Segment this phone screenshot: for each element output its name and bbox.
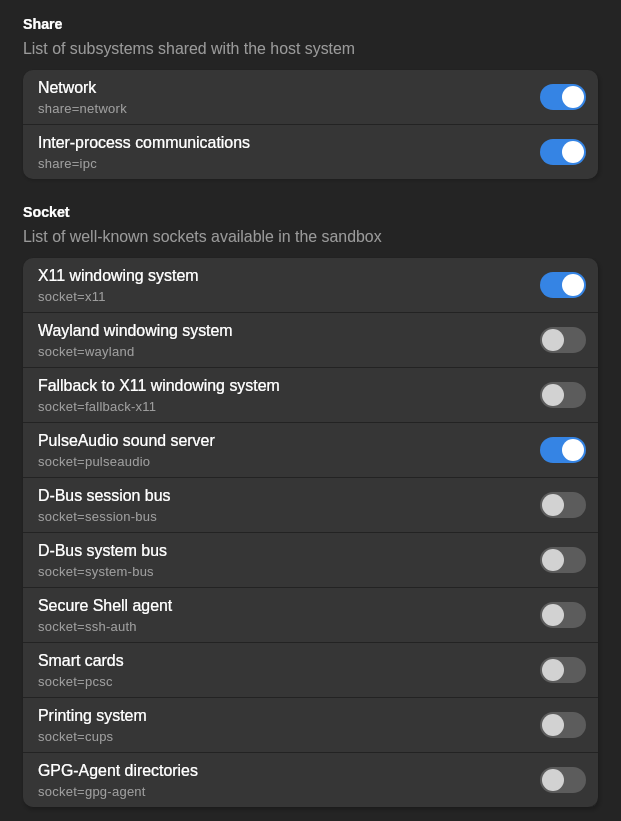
staticText: socket=gpg-agent [38,784,146,799]
button[interactable]: PulseAudio sound server [23,423,598,477]
staticText: List of subsystems shared with the host … [23,40,356,58]
button[interactable]: D-Bus session bus [23,478,598,532]
button[interactable]: Disabled [540,767,586,793]
button[interactable]: Disabled [540,657,586,683]
staticText: socket=session-bus [38,509,158,524]
button[interactable]: D-Bus system bus [23,533,598,587]
button[interactable]: Disabled [540,547,586,573]
button[interactable]: Enabled [540,139,586,165]
button[interactable]: Fallback to X11 windowing system [23,368,598,422]
staticText: List of well-known sockets available in … [23,228,382,246]
staticText: socket=fallback-x11 [38,399,157,414]
staticText: Fallback to X11 windowing system [38,377,280,395]
staticText: Smart cards [38,652,124,670]
button[interactable]: Network [23,70,598,124]
staticText: Wayland windowing system [38,322,233,340]
button[interactable]: Disabled [540,712,586,738]
button[interactable]: Inter-process communications [23,125,598,179]
staticText: share=network [38,101,127,116]
staticText: D-Bus session bus [38,487,171,505]
staticText: socket=wayland [38,344,135,359]
button[interactable]: Wayland windowing system [23,313,598,367]
button[interactable]: Secure Shell agent [23,588,598,642]
button[interactable]: Disabled [540,602,586,628]
button[interactable]: Smart cards [23,643,598,697]
staticText: X11 windowing system [38,267,199,285]
staticText: socket=cups [38,729,114,744]
button[interactable]: Disabled [540,327,586,353]
button[interactable]: Enabled [540,84,586,110]
staticText: socket=ssh-auth [38,619,137,634]
staticText: D-Bus system bus [38,542,167,560]
staticText: Network [38,79,97,97]
button[interactable]: X11 windowing system [23,258,598,312]
button[interactable]: Disabled [540,382,586,408]
staticText: Secure Shell agent [38,597,173,615]
staticText: PulseAudio sound server [38,432,215,450]
staticText: socket=x11 [38,289,106,304]
button[interactable]: Disabled [540,492,586,518]
staticText: socket=system-bus [38,564,154,579]
staticText: share=ipc [38,156,97,171]
staticText: socket=pcsc [38,674,113,689]
button[interactable]: Enabled [540,437,586,463]
staticText: GPG-Agent directories [38,762,198,780]
button[interactable]: Printing system [23,698,598,752]
staticText: Socket [23,204,70,220]
staticText: Inter-process communications [38,134,250,152]
staticText: Share [23,16,63,32]
button[interactable]: Enabled [540,272,586,298]
staticText: socket=pulseaudio [38,454,151,469]
staticText: Printing system [38,707,147,725]
button[interactable]: GPG-Agent directories [23,753,598,807]
